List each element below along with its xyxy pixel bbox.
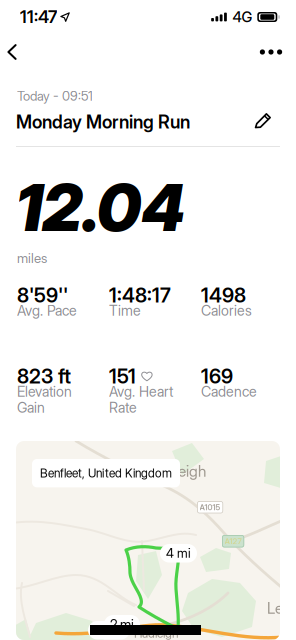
staticText: miles bbox=[17, 250, 47, 266]
button[interactable]: Edit run bbox=[246, 105, 280, 135]
button[interactable]: Back bbox=[7, 36, 47, 68]
staticText: Hadleigh bbox=[134, 626, 179, 640]
staticText: Gain bbox=[17, 399, 45, 416]
staticText: Monday Morning Run bbox=[16, 111, 190, 133]
staticText: Cadence bbox=[201, 383, 257, 400]
staticText: 12.04 bbox=[16, 169, 185, 246]
staticText: Avg. Heart bbox=[109, 383, 173, 400]
staticText: A127 bbox=[225, 536, 242, 546]
staticText: A1015 bbox=[200, 502, 221, 512]
staticText: 11:47 bbox=[20, 6, 57, 27]
staticText: Benfleet, United Kingdom bbox=[40, 466, 172, 480]
staticText: eigh bbox=[178, 462, 206, 481]
staticText: Today - 09:51 bbox=[17, 88, 93, 104]
staticText: 4 mi bbox=[166, 546, 191, 561]
staticText: 1498 bbox=[201, 283, 246, 307]
staticText: Rate bbox=[109, 399, 137, 416]
button[interactable]: More options bbox=[242, 36, 282, 68]
staticText: Elevation bbox=[17, 383, 72, 400]
staticText: Calories bbox=[201, 302, 252, 319]
staticText: 10 mi bbox=[94, 622, 124, 638]
staticText: 169 bbox=[201, 364, 233, 388]
staticText: Time bbox=[109, 302, 141, 319]
staticText: 8'59'' bbox=[17, 283, 68, 307]
staticText: Le bbox=[267, 599, 283, 618]
staticText: 2 mi bbox=[110, 616, 134, 632]
staticText: 151 bbox=[109, 364, 136, 388]
staticText: 4G bbox=[232, 8, 252, 26]
staticText: Avg. Pace bbox=[17, 302, 77, 319]
staticText: 823 ft bbox=[17, 364, 71, 388]
staticText: 1:48:17 bbox=[109, 283, 171, 307]
